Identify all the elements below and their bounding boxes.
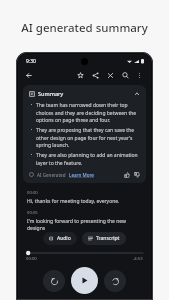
button[interactable]: Audio — [43, 232, 77, 245]
staticText: Audio — [57, 235, 71, 242]
staticText: 00:00 — [27, 190, 38, 196]
button[interactable]: Transcript — [82, 232, 126, 245]
button[interactable]: Search — [120, 70, 131, 81]
button[interactable]: Collapse — [134, 91, 140, 97]
staticText: I'm looking forward to presenting the ne… — [27, 218, 142, 232]
staticText: They are proposing that they can save th… — [36, 127, 140, 148]
staticText: The team has narrowed down their top cho… — [36, 102, 140, 123]
button[interactable]: More options — [134, 70, 145, 81]
staticText: They are also planning to add an animati… — [36, 152, 140, 166]
button[interactable]: Back — [24, 70, 35, 81]
button[interactable]: Forward 10 seconds — [104, 270, 126, 292]
staticText: 00:00 — [26, 256, 37, 262]
staticText: Transcript — [96, 235, 120, 242]
staticText: Summary — [38, 90, 64, 97]
staticText: 00:05 — [27, 210, 38, 216]
staticText: -4:53 — [133, 256, 143, 262]
button[interactable]: Link — [105, 70, 116, 81]
button[interactable]: Thumbs down — [133, 171, 140, 178]
staticText: AI generated summary — [0, 20, 169, 36]
staticText: Hi, thanks for meeting today, everyone. — [27, 198, 120, 205]
staticText: 9:30 — [26, 58, 36, 65]
staticText: AI Generated — [37, 172, 66, 178]
button[interactable]: Share — [90, 70, 101, 81]
button[interactable]: Learn More — [69, 172, 94, 178]
button[interactable]: Thumbs up — [123, 171, 130, 178]
button[interactable]: Summary — [23, 85, 146, 183]
button[interactable]: Star — [75, 70, 86, 81]
button[interactable]: Play — [71, 267, 98, 294]
button[interactable]: Rewind 10 seconds — [43, 270, 65, 292]
